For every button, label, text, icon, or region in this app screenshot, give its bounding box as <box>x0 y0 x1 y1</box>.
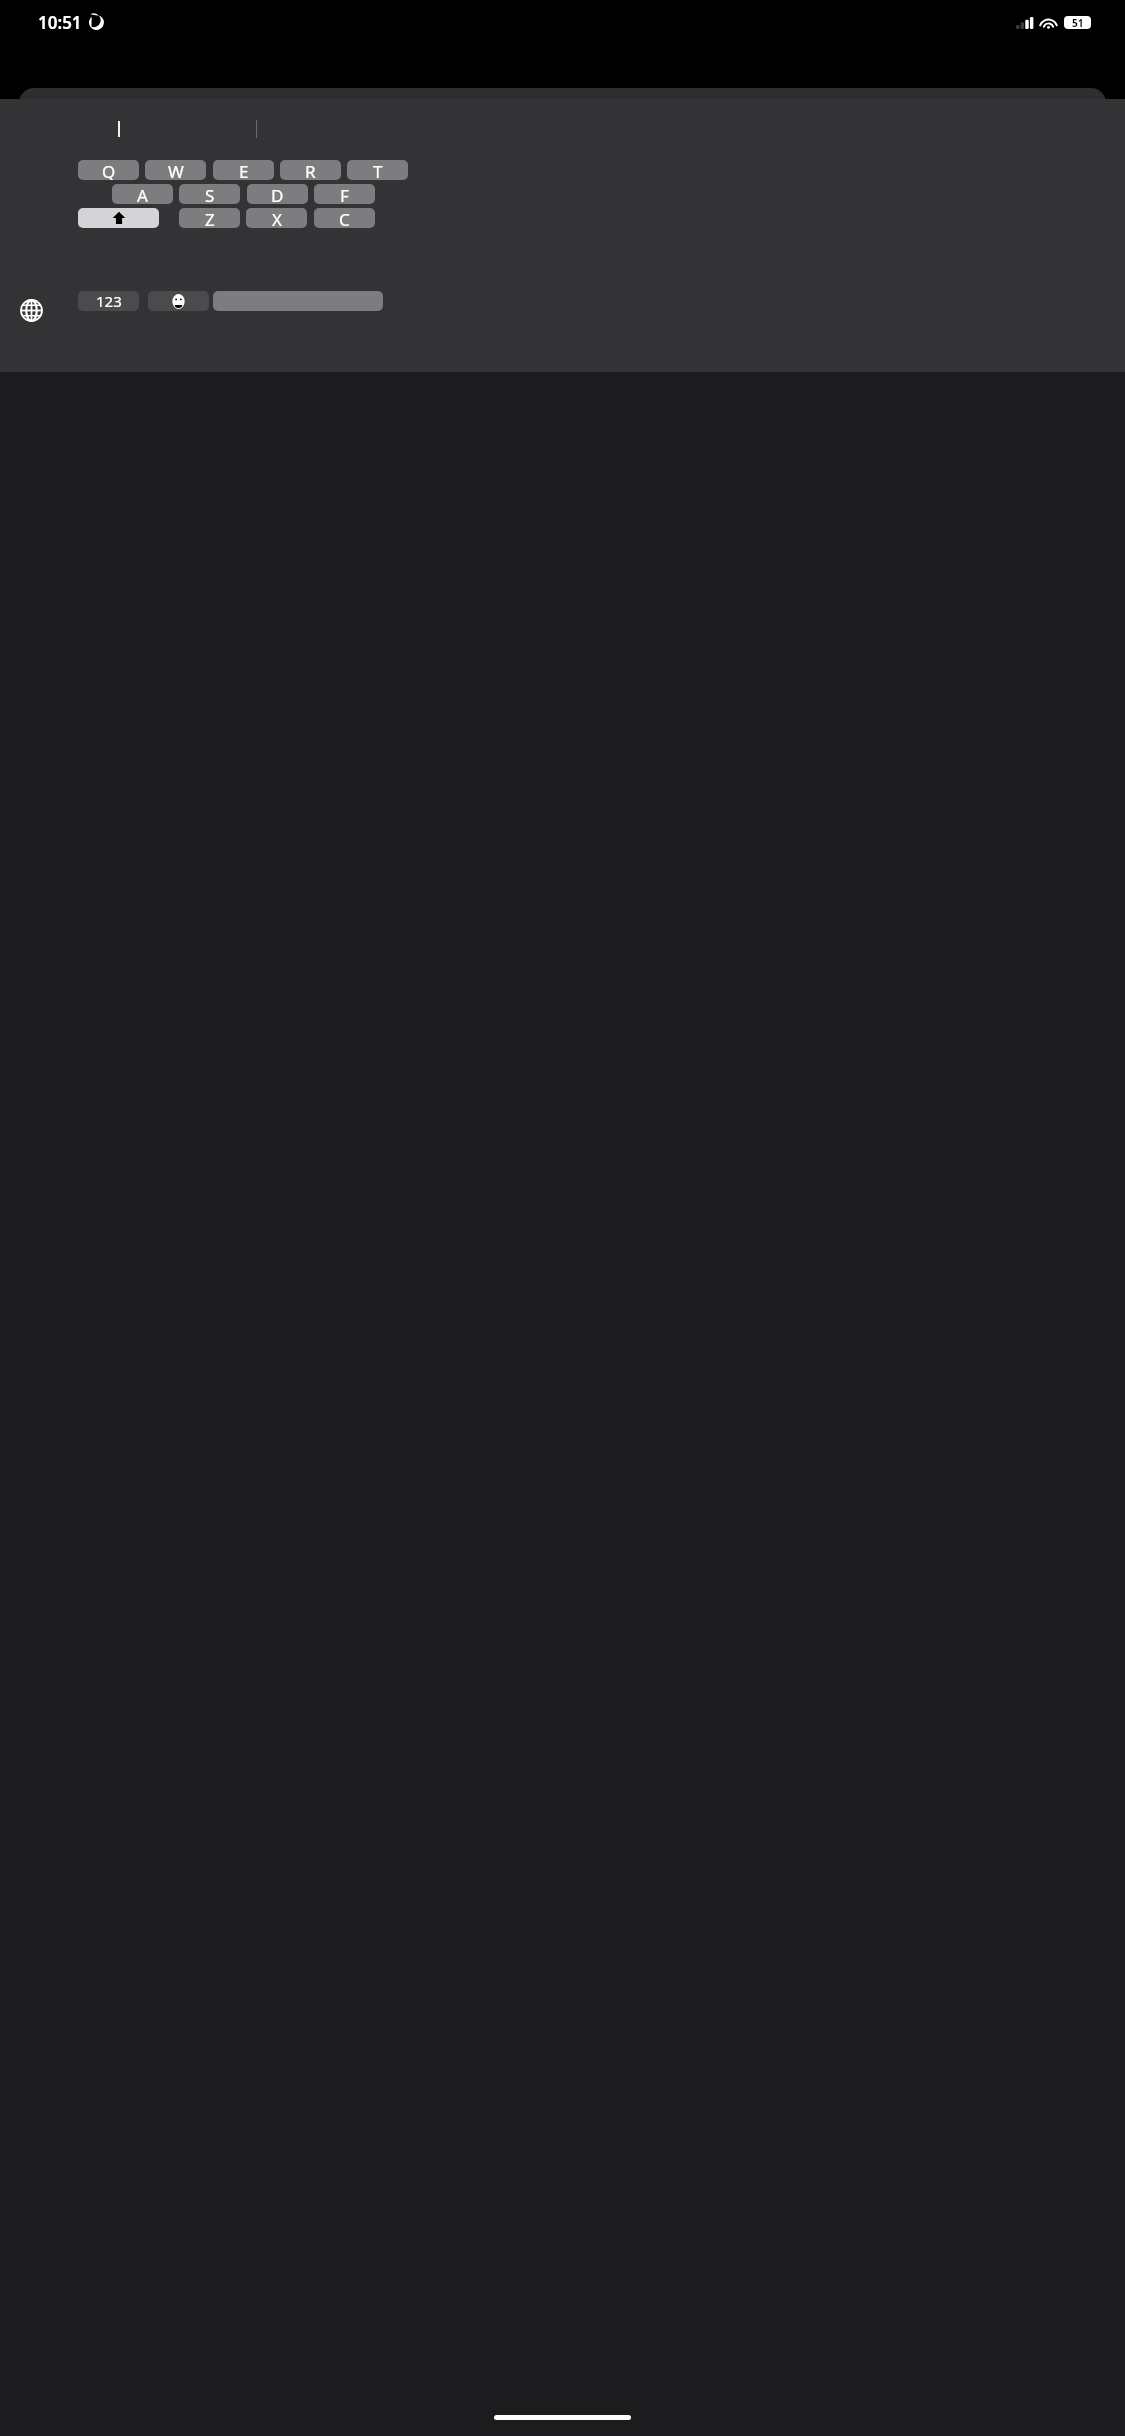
button[interactable]: C <box>314 208 375 228</box>
staticText: Tap a Star to Rate <box>0 217 1125 239</box>
button[interactable]: Shift <box>78 208 159 228</box>
staticText: 10:51 <box>38 11 82 34</box>
button[interactable]: T <box>347 160 408 180</box>
staticText: 51 <box>1072 16 1084 29</box>
button[interactable]: 123 <box>78 291 139 311</box>
button[interactable]: S <box>179 184 240 204</box>
staticText: Q <box>102 160 116 180</box>
staticText: D <box>271 184 284 204</box>
button[interactable]: Q <box>78 160 139 180</box>
staticText: Z <box>205 208 215 228</box>
staticText: Title <box>12 277 60 310</box>
staticText: S <box>205 184 215 204</box>
staticText: T <box>373 160 383 180</box>
staticText: A <box>137 184 148 204</box>
button[interactable]: Switch keyboard language <box>18 297 44 323</box>
button[interactable]: X <box>246 208 307 228</box>
button[interactable]: Cancel <box>0 116 96 163</box>
button[interactable]: W <box>145 160 206 180</box>
staticText: E <box>239 160 249 180</box>
button[interactable]: Space <box>213 291 383 311</box>
button[interactable]: Emoji <box>148 291 209 311</box>
button[interactable]: A <box>112 184 173 204</box>
staticText: 123 <box>96 291 122 311</box>
staticText: F <box>340 184 349 204</box>
button[interactable]: E <box>213 160 274 180</box>
staticText: C <box>339 208 350 228</box>
button[interactable]: Z <box>179 208 240 228</box>
button[interactable]: F <box>314 184 375 204</box>
staticText: R <box>305 160 316 180</box>
staticText: W <box>168 160 184 180</box>
button[interactable]: D <box>247 184 308 204</box>
button[interactable]: R <box>280 160 341 180</box>
staticText: X <box>272 208 282 228</box>
